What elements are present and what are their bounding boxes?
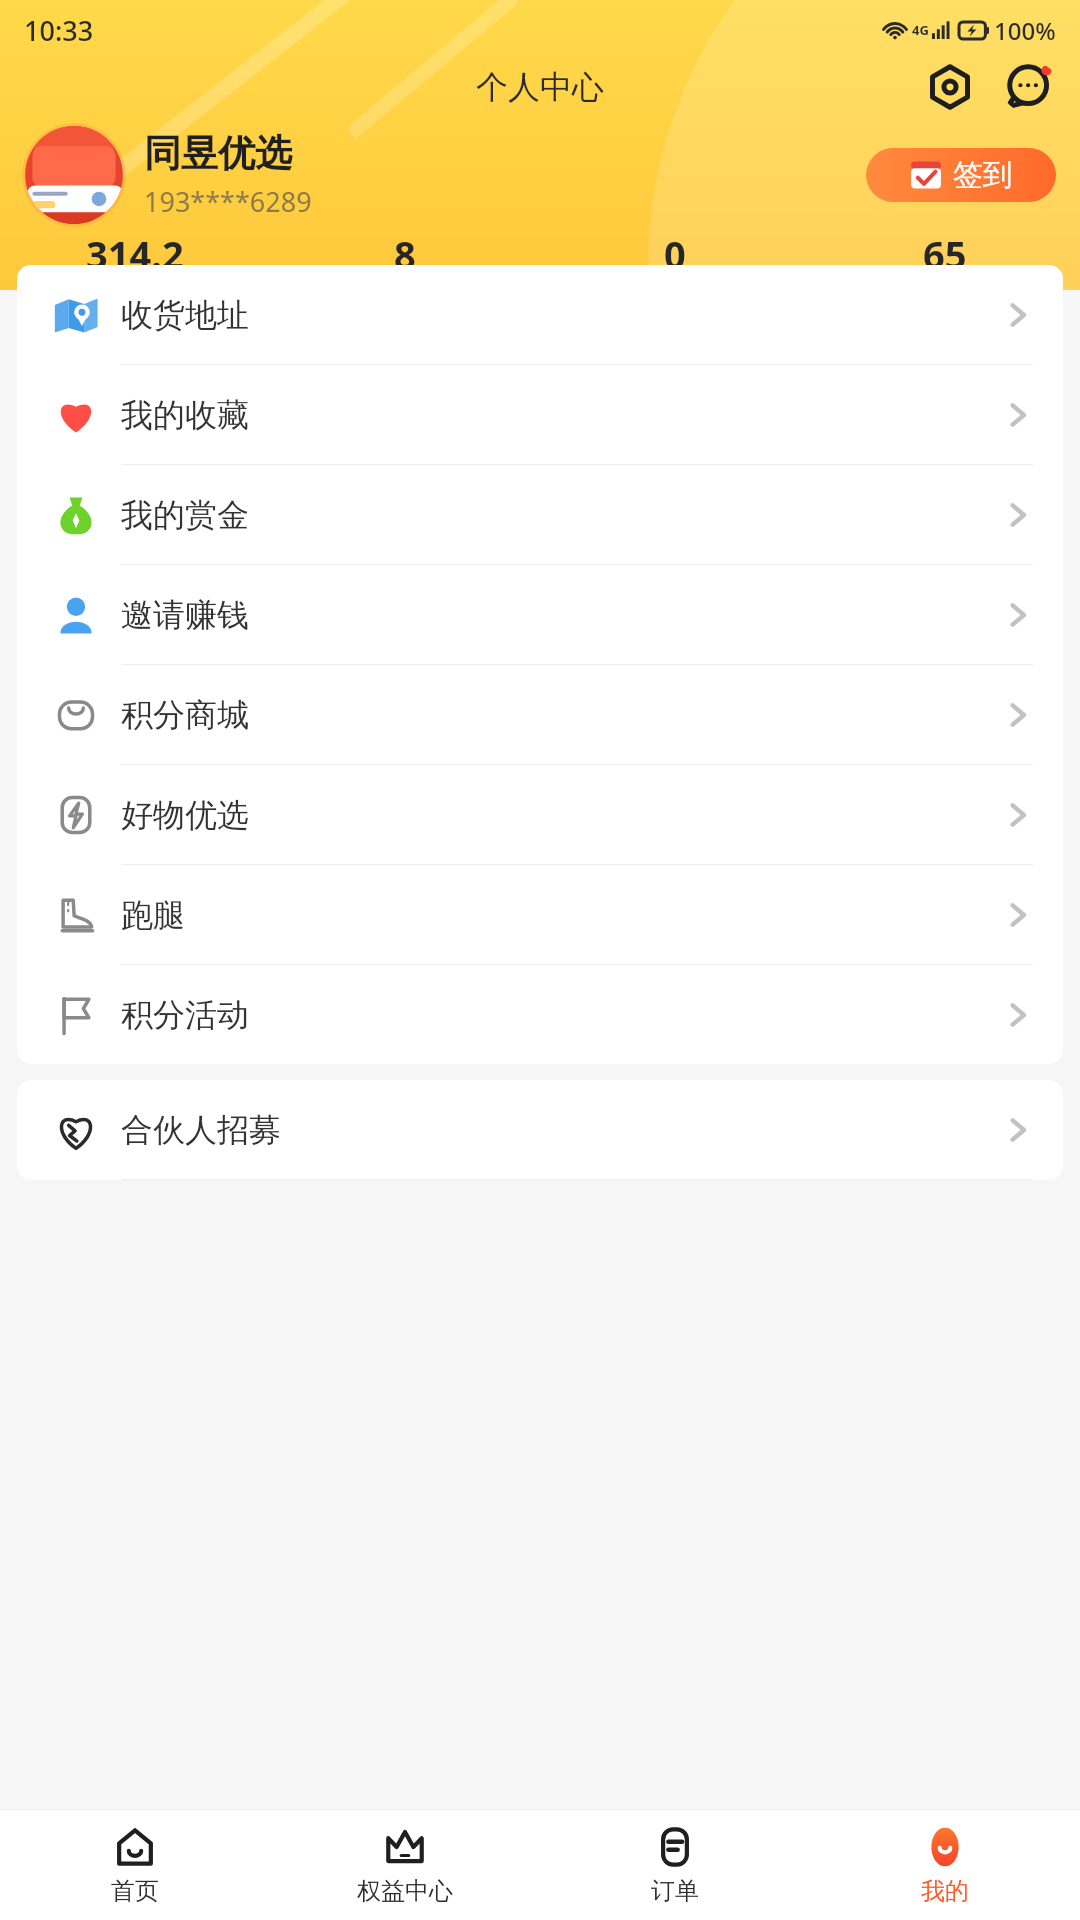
staticText: 193****6289 [144, 183, 312, 220]
button[interactable]: 订单 [540, 1810, 810, 1920]
staticText: 个人中心 [476, 67, 604, 107]
button[interactable]: 邀请赚钱 [17, 565, 1063, 665]
button[interactable]: Messages [1002, 62, 1058, 112]
staticText: 首页 [111, 1876, 159, 1906]
staticText: 好物优选 [121, 795, 1003, 835]
button[interactable]: 314.2 [0, 228, 270, 286]
button[interactable]: 合伙人招募 [17, 1080, 1063, 1180]
staticText: 积分活动 [121, 995, 1003, 1035]
button[interactable]: 我的 [810, 1810, 1080, 1920]
button[interactable]: 跑腿 [17, 865, 1063, 965]
button[interactable]: 收货地址 [17, 265, 1063, 365]
button[interactable]: 首页 [0, 1810, 270, 1920]
staticText: 邀请赚钱 [121, 595, 1003, 635]
staticText: 签到 [953, 156, 1013, 194]
button[interactable]: 我的赏金 [17, 465, 1063, 565]
staticText: 10:33 [24, 12, 94, 49]
button[interactable]: 积分商城 [17, 665, 1063, 765]
staticText: 0 [664, 228, 686, 280]
staticText: 权益中心 [357, 1876, 453, 1906]
staticText: 合伙人招募 [121, 1110, 1003, 1150]
staticText: 积分商城 [121, 695, 1003, 735]
staticText: 跑腿 [121, 895, 1003, 935]
staticText: 我的赏金 [121, 495, 1003, 535]
button[interactable]: 8 [270, 228, 540, 286]
staticText: 8 [394, 228, 416, 280]
button[interactable]: 好物优选 [17, 765, 1063, 865]
staticText: 我的 [921, 1876, 969, 1906]
staticText: 65 [923, 228, 967, 280]
staticText: 收货地址 [121, 295, 1003, 335]
button[interactable]: 权益中心 [270, 1810, 540, 1920]
staticText: 订单 [651, 1876, 699, 1906]
staticText: 100% [994, 14, 1056, 47]
button[interactable]: Scan [922, 62, 978, 112]
staticText: 我的收藏 [121, 395, 1003, 435]
button[interactable]: 0 [540, 228, 810, 286]
staticText: 同昱优选 [144, 130, 292, 177]
staticText: 4G [912, 21, 929, 39]
staticText: 314.2 [86, 228, 184, 280]
button[interactable]: 65 [810, 228, 1080, 286]
button[interactable]: 积分活动 [17, 965, 1063, 1064]
button[interactable] [22, 123, 126, 227]
button[interactable]: 我的收藏 [17, 365, 1063, 465]
button[interactable]: 签到 [866, 148, 1056, 202]
